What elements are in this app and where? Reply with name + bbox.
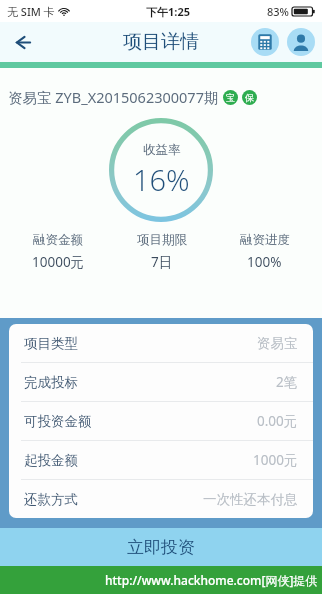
staticText: 资易宝 ZYB_X2015062300077期	[8, 87, 219, 107]
staticText: 立即投资	[127, 537, 195, 558]
staticText: 项目期限	[137, 232, 187, 248]
staticText: 项目类型	[24, 335, 78, 352]
button[interactable]: 可投资金额	[9, 402, 313, 440]
staticText: 融资进度	[240, 232, 290, 248]
staticText: 完成投标	[24, 374, 78, 391]
staticText: 100%	[247, 253, 282, 271]
staticText: 0.00元	[257, 412, 298, 430]
button[interactable]: 立即投资	[0, 528, 322, 566]
staticText: 融资金额	[33, 232, 83, 248]
staticText: 一次性还本付息	[203, 491, 298, 508]
button[interactable]: Profile	[287, 28, 315, 56]
staticText: 可投资金额	[24, 413, 92, 430]
staticText: 下午1:25	[146, 4, 190, 19]
staticText: 16%	[133, 160, 190, 199]
staticText: 资易宝	[257, 335, 298, 352]
button[interactable]: Back	[0, 22, 44, 62]
button[interactable]: 完成投标	[9, 363, 313, 401]
staticText: 2笔	[276, 373, 298, 391]
staticText: 83%	[267, 4, 289, 19]
staticText: 10000元	[32, 253, 85, 271]
staticText: 还款方式	[24, 491, 78, 508]
button[interactable]: Calculator	[251, 28, 279, 56]
staticText: http://www.hackhome.com[网侠]提供	[105, 572, 318, 588]
staticText: 宝	[226, 92, 235, 103]
staticText: 收益率	[143, 142, 181, 158]
button[interactable]: 起投金额	[9, 441, 313, 479]
staticText: 7日	[151, 253, 173, 271]
staticText: 1000元	[253, 451, 298, 469]
button[interactable]: 还款方式	[9, 480, 313, 518]
staticText: 起投金额	[24, 452, 78, 469]
staticText: 无 SIM 卡	[7, 4, 55, 19]
staticText: 项目详情	[123, 30, 199, 54]
button[interactable]: 项目类型	[9, 324, 313, 362]
staticText: 保	[245, 92, 254, 103]
